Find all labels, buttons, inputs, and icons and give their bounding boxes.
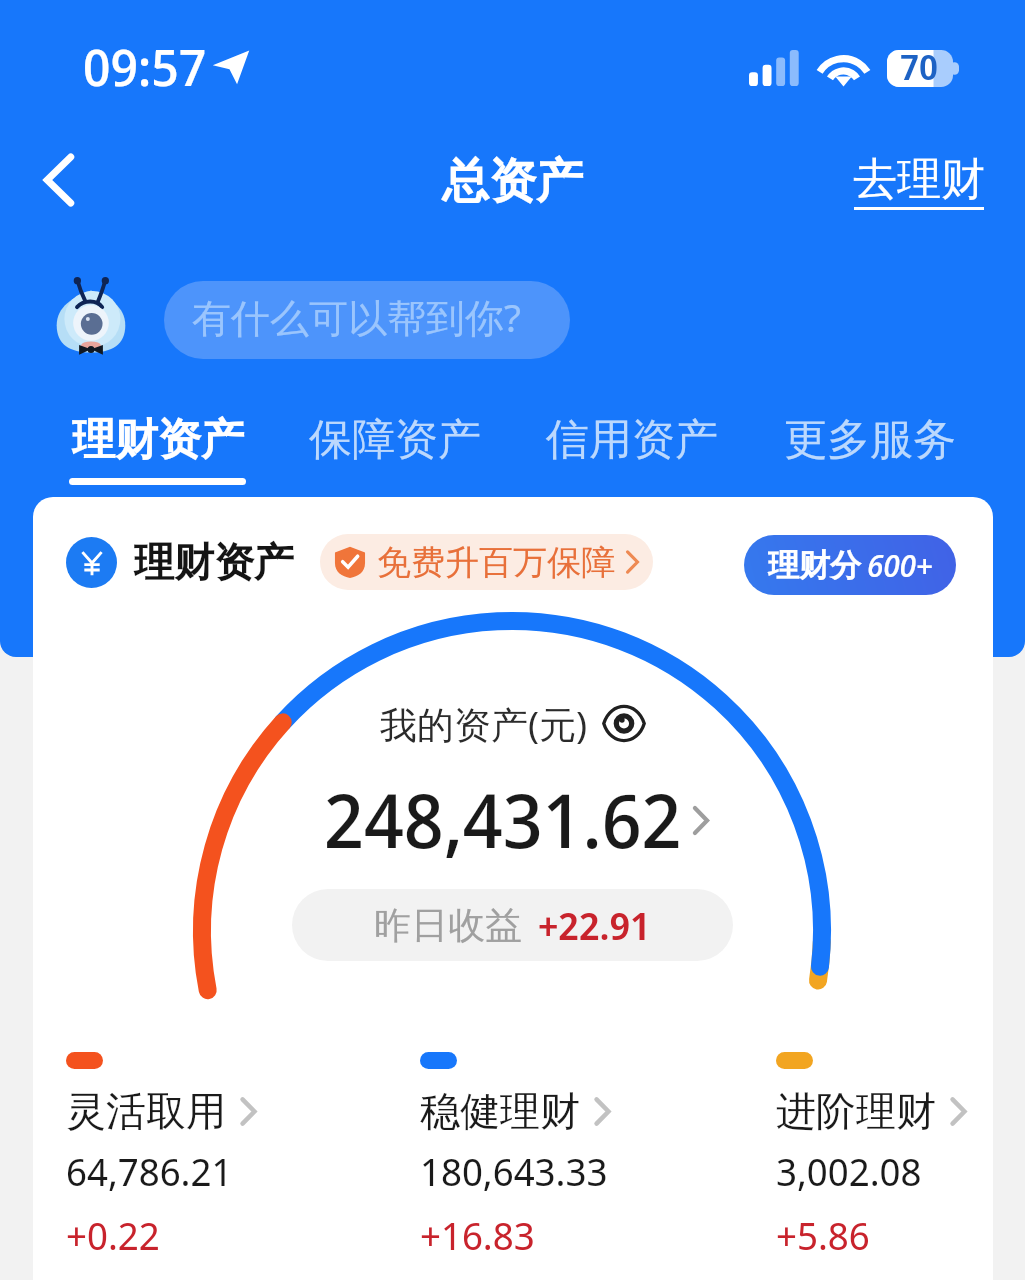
staticText: 有什么可以帮到你? bbox=[192, 290, 521, 343]
button[interactable]: 保障资产 bbox=[309, 413, 481, 467]
staticText: +0.22 bbox=[66, 1208, 160, 1261]
staticText: 更多服务 bbox=[784, 413, 956, 467]
button[interactable]: 有什么可以帮到你? bbox=[164, 281, 570, 359]
staticText: +16.83 bbox=[420, 1208, 535, 1261]
staticText: 信用资产 bbox=[546, 413, 718, 467]
staticText: 理财资产 bbox=[134, 537, 294, 587]
button[interactable]: 理财资产 bbox=[69, 413, 246, 485]
staticText: 70 bbox=[900, 43, 938, 91]
staticText: 进阶理财 bbox=[776, 1086, 936, 1136]
staticText: 我的资产(元) bbox=[380, 698, 588, 749]
button[interactable]: 免费升百万保障 bbox=[320, 534, 653, 590]
staticText: 600+ bbox=[867, 544, 933, 586]
staticText: 灵活取用 bbox=[66, 1086, 226, 1136]
button[interactable]: Back bbox=[24, 140, 94, 220]
staticText: 理财分 bbox=[768, 546, 861, 585]
staticText: +5.86 bbox=[776, 1208, 870, 1261]
staticText: 昨日收益 bbox=[374, 902, 522, 949]
staticText: 免费升百万保障 bbox=[377, 541, 615, 584]
button[interactable]: 去理财 bbox=[853, 152, 985, 210]
button[interactable]: 稳健理财 bbox=[420, 1052, 710, 1261]
staticText: 理财资产 bbox=[72, 413, 244, 467]
staticText: 3,002.08 bbox=[776, 1144, 922, 1197]
button[interactable]: 灵活取用 bbox=[66, 1052, 356, 1261]
button[interactable]: 理财分 bbox=[744, 535, 956, 595]
button[interactable]: 昨日收益 bbox=[292, 889, 733, 961]
button[interactable]: 248,431.62 bbox=[4, 769, 1025, 870]
staticText: 09:57 bbox=[83, 31, 207, 100]
staticText: 总资产 bbox=[442, 152, 583, 211]
staticText: 保障资产 bbox=[309, 413, 481, 467]
button[interactable]: 更多服务 bbox=[784, 413, 956, 467]
staticText: 64,786.21 bbox=[66, 1144, 233, 1197]
button[interactable]: 进阶理财 bbox=[776, 1052, 1025, 1261]
staticText: 去理财 bbox=[853, 152, 985, 207]
staticText: 稳健理财 bbox=[420, 1086, 580, 1136]
staticText: +22.91 bbox=[538, 899, 651, 951]
staticText: 248,431.62 bbox=[324, 769, 682, 870]
staticText: 180,643.33 bbox=[420, 1144, 608, 1197]
button[interactable]: 我的资产(元) bbox=[0, 698, 1025, 749]
button[interactable]: 信用资产 bbox=[546, 413, 718, 467]
